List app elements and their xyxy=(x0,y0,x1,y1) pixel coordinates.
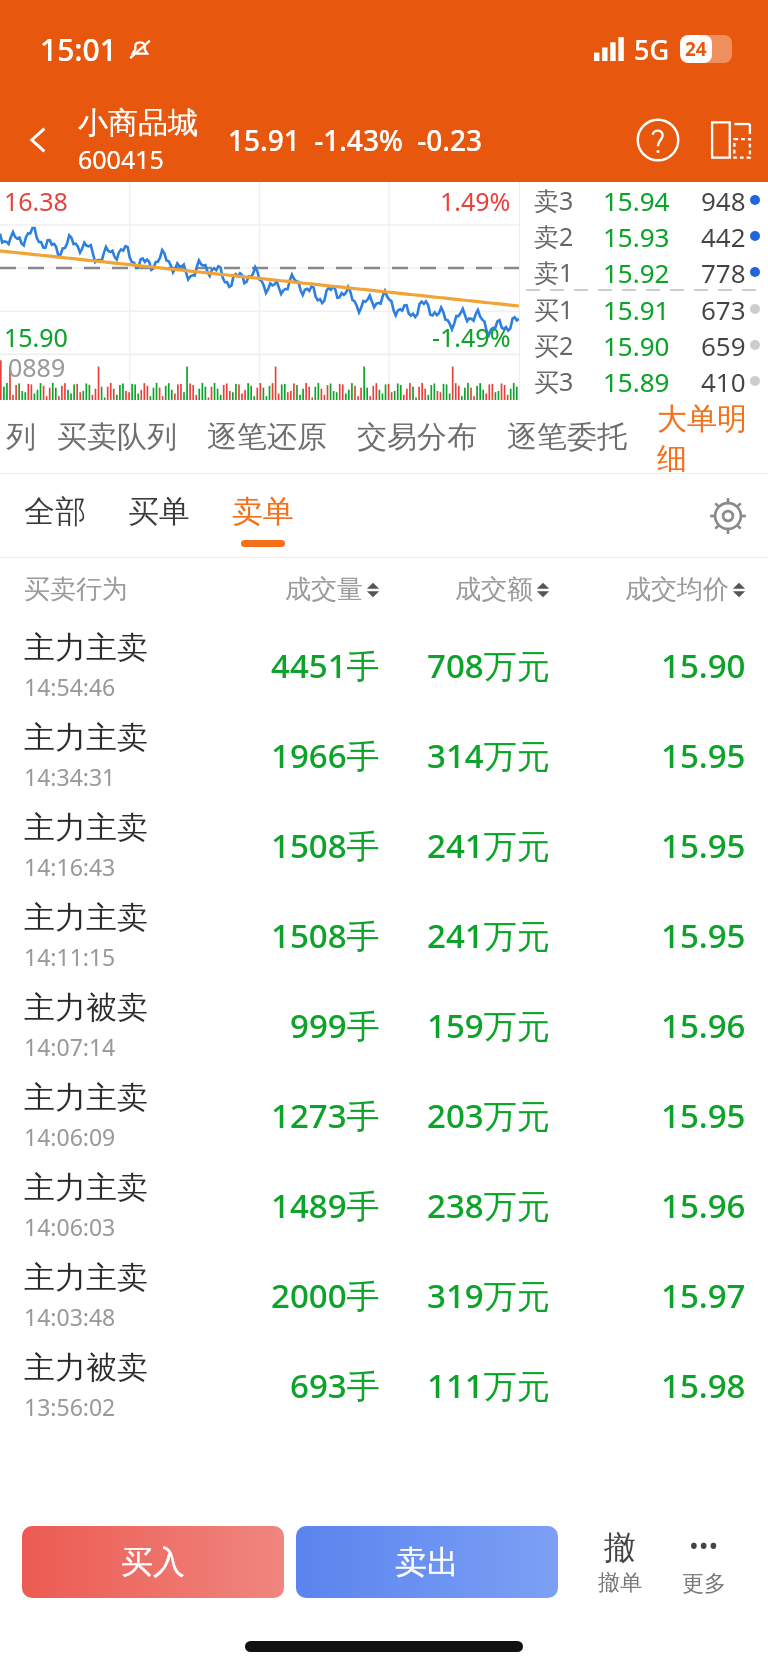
staticText: 主力主卖 xyxy=(24,898,148,937)
staticText: 600415 xyxy=(78,142,164,176)
staticText: 大单明细 xyxy=(657,400,753,474)
button[interactable]: 卖出 xyxy=(296,1526,558,1598)
staticText: 买单 xyxy=(128,492,190,531)
staticText: 1508手 xyxy=(271,913,380,958)
staticText: 小商品城 xyxy=(78,104,198,142)
staticText: 693手 xyxy=(290,1363,380,1408)
staticText: 16.38 xyxy=(4,184,68,218)
staticText: 15.97 xyxy=(661,1273,746,1318)
button[interactable]: 主力主卖 xyxy=(0,890,768,980)
staticText: 成交均价 xyxy=(625,573,729,606)
staticText: 逐笔委托 xyxy=(507,418,627,456)
staticText: 159万元 xyxy=(427,1003,550,1048)
button[interactable]: 逐笔委托 xyxy=(492,400,642,474)
button[interactable]: 大单明细 xyxy=(642,400,768,474)
staticText: 撤 xyxy=(604,1527,636,1567)
button[interactable]: 成交均价 xyxy=(550,573,746,606)
button[interactable]: 卖单 xyxy=(194,474,298,558)
button[interactable]: 主力主卖 xyxy=(0,1070,768,1160)
staticText: 14:03:48 xyxy=(24,1301,116,1332)
staticText: 买入 xyxy=(121,1542,185,1582)
staticText: 买卖队列 xyxy=(57,418,177,456)
staticText: 24 xyxy=(685,36,707,62)
staticText: 15.94 xyxy=(603,183,670,218)
button[interactable]: 买入 xyxy=(22,1526,284,1598)
button[interactable]: ••• xyxy=(662,1527,746,1598)
staticText: 主力主卖 xyxy=(24,1168,148,1207)
staticText: 14:54:46 xyxy=(24,671,116,702)
staticText: 列 xyxy=(6,418,36,456)
button[interactable]: 逐笔还原 xyxy=(192,400,342,474)
button[interactable]: 主力被卖 xyxy=(0,1340,768,1430)
staticText: 314万元 xyxy=(427,733,550,778)
staticText: 卖2 xyxy=(534,219,574,253)
staticText: 逐笔还原 xyxy=(207,418,327,456)
button[interactable]: 主力被卖 xyxy=(0,980,768,1070)
staticText: 778 xyxy=(701,255,746,290)
button[interactable]: 列 xyxy=(0,400,42,474)
staticText: -1.49% xyxy=(432,320,511,354)
staticText: 全部 xyxy=(24,492,86,531)
button[interactable]: 全部 xyxy=(0,474,90,558)
button[interactable]: 买单 xyxy=(90,474,194,558)
staticText: 442 xyxy=(701,219,746,254)
button[interactable]: Back xyxy=(0,98,78,182)
button[interactable]: 买卖队列 xyxy=(42,400,192,474)
button[interactable]: 主力主卖 xyxy=(0,1160,768,1250)
button[interactable]: 买1 xyxy=(520,291,768,327)
staticText: 更多 xyxy=(682,1570,726,1598)
staticText: 14:11:15 xyxy=(24,941,116,972)
staticText: 15.91 xyxy=(603,292,670,327)
staticText: 卖3 xyxy=(534,183,574,217)
button[interactable]: 卖2 xyxy=(520,218,768,254)
staticText: 673 xyxy=(701,292,746,327)
staticText: 主力主卖 xyxy=(24,1258,148,1297)
staticText: 成交量 xyxy=(285,573,363,606)
staticText: 成交额 xyxy=(455,573,533,606)
button[interactable]: 主力主卖 xyxy=(0,710,768,800)
staticText: 241万元 xyxy=(427,913,550,958)
button[interactable]: 卖1 xyxy=(520,254,768,290)
staticText: 2000手 xyxy=(271,1273,380,1318)
staticText: 999手 xyxy=(290,1003,380,1048)
staticText: 主力被卖 xyxy=(24,988,148,1027)
button[interactable]: 主力主卖 xyxy=(0,1250,768,1340)
button[interactable]: 撤 xyxy=(578,1527,662,1597)
staticText: 14:06:03 xyxy=(24,1211,116,1242)
staticText: 15.96 xyxy=(661,1003,746,1048)
staticText: 15:01 xyxy=(40,29,117,70)
staticText: 卖单 xyxy=(232,492,294,531)
button[interactable]: 卖3 xyxy=(520,182,768,218)
staticText: 15.90 xyxy=(661,643,746,688)
button[interactable]: 交易分布 xyxy=(342,400,492,474)
staticText: 1966手 xyxy=(271,733,380,778)
button[interactable]: 买2 xyxy=(520,327,768,363)
staticText: 买卖行为 xyxy=(24,573,128,606)
button[interactable]: 成交额 xyxy=(380,573,550,606)
staticText: 15.95 xyxy=(661,823,746,868)
staticText: 撤单 xyxy=(598,1569,642,1597)
staticText: 203万元 xyxy=(427,1093,550,1138)
staticText: 主力主卖 xyxy=(24,1078,148,1117)
staticText: 14:34:31 xyxy=(24,761,116,792)
staticText: 买2 xyxy=(534,328,574,362)
staticText: 15.92 xyxy=(603,255,670,290)
staticText: 15.95 xyxy=(661,733,746,778)
button[interactable]: Layout xyxy=(694,103,768,177)
staticText: 5G xyxy=(634,31,670,68)
button[interactable]: 买3 xyxy=(520,363,768,399)
button[interactable]: 主力主卖 xyxy=(0,620,768,710)
button[interactable]: 成交量 xyxy=(210,573,380,606)
staticText: 主力主卖 xyxy=(24,718,148,757)
button[interactable]: Help xyxy=(622,104,694,176)
staticText: 15.90 xyxy=(4,320,68,354)
staticText: 13:56:02 xyxy=(24,1391,116,1422)
button[interactable]: Settings xyxy=(688,476,768,556)
staticText: 卖出 xyxy=(395,1542,459,1582)
staticText: 买1 xyxy=(534,292,574,326)
staticText: 1508手 xyxy=(271,823,380,868)
staticText: 15.98 xyxy=(661,1363,746,1408)
staticText: 1489手 xyxy=(271,1183,380,1228)
button[interactable]: 主力主卖 xyxy=(0,800,768,890)
staticText: 主力主卖 xyxy=(24,808,148,847)
